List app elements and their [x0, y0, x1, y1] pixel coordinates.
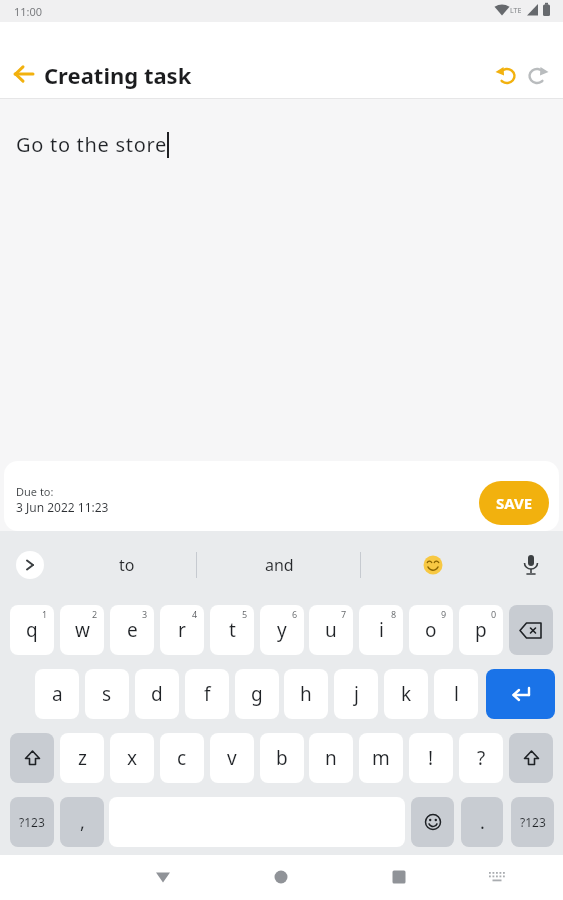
staticText: .: [480, 810, 485, 835]
staticText: p: [475, 617, 487, 643]
button[interactable]: d: [135, 669, 179, 719]
button[interactable]: y: [260, 605, 304, 655]
button[interactable]: j: [334, 669, 378, 719]
staticText: h: [300, 681, 312, 707]
staticText: a: [52, 681, 63, 707]
staticText: 3: [142, 608, 148, 620]
button[interactable]: [492, 61, 520, 89]
button[interactable]: c: [160, 733, 204, 783]
button[interactable]: h: [284, 669, 328, 719]
staticText: e: [127, 617, 138, 643]
staticText: z: [78, 745, 87, 771]
button[interactable]: r: [160, 605, 204, 655]
button[interactable]: [511, 545, 551, 585]
staticText: 8: [391, 608, 397, 620]
button[interactable]: g: [235, 669, 279, 719]
button[interactable]: [486, 669, 555, 719]
button[interactable]: k: [384, 669, 428, 719]
staticText: g: [251, 681, 263, 707]
staticText: 1: [42, 608, 48, 620]
button[interactable]: [477, 857, 517, 897]
button[interactable]: [10, 733, 54, 783]
staticText: 3 Jun 2022 11:23: [16, 499, 109, 515]
staticText: f: [204, 681, 211, 707]
button[interactable]: q: [10, 605, 54, 655]
button[interactable]: w: [60, 605, 104, 655]
staticText: y: [277, 617, 287, 643]
staticText: t: [229, 617, 236, 643]
staticText: u: [325, 617, 337, 643]
staticText: v: [227, 745, 237, 771]
button[interactable]: [16, 551, 44, 579]
staticText: Go to the store: [16, 131, 167, 158]
button[interactable]: ,: [60, 797, 104, 847]
button[interactable]: [411, 797, 454, 847]
staticText: ?: [477, 745, 486, 771]
staticText: d: [151, 681, 163, 707]
staticText: ?123: [520, 814, 546, 830]
staticText: 11:00: [14, 4, 43, 19]
button[interactable]: ?: [459, 733, 503, 783]
staticText: LTE: [510, 6, 522, 16]
staticText: b: [276, 745, 288, 771]
button[interactable]: [261, 857, 301, 897]
button[interactable]: [143, 857, 183, 897]
staticText: k: [401, 681, 412, 707]
button[interactable]: ?123: [511, 797, 554, 847]
staticText: o: [425, 617, 437, 643]
staticText: Due to:: [16, 484, 54, 499]
staticText: and: [265, 554, 294, 576]
staticText: 9: [441, 608, 447, 620]
staticText: w: [75, 617, 90, 643]
button[interactable]: [4, 54, 44, 94]
button[interactable]: l: [434, 669, 478, 719]
staticText: j: [354, 681, 359, 707]
staticText: 4: [192, 608, 198, 620]
button[interactable]: SAVE: [479, 481, 549, 525]
button[interactable]: t: [210, 605, 254, 655]
button[interactable]: v: [210, 733, 254, 783]
staticText: Creating task: [44, 60, 192, 90]
staticText: s: [102, 681, 112, 707]
button[interactable]: x: [110, 733, 154, 783]
button[interactable]: ?123: [10, 797, 54, 847]
button[interactable]: i: [359, 605, 403, 655]
staticText: !: [428, 745, 434, 771]
staticText: SAVE: [496, 493, 533, 513]
button[interactable]: [413, 545, 453, 585]
button[interactable]: a: [35, 669, 79, 719]
button[interactable]: s: [85, 669, 129, 719]
button[interactable]: .: [461, 797, 503, 847]
staticText: 0: [491, 608, 497, 620]
button[interactable]: [523, 61, 551, 89]
button[interactable]: to: [58, 545, 196, 585]
staticText: i: [379, 617, 384, 643]
staticText: c: [177, 745, 187, 771]
staticText: m: [372, 745, 390, 771]
button[interactable]: b: [260, 733, 304, 783]
staticText: to: [119, 554, 135, 576]
staticText: n: [325, 745, 337, 771]
button[interactable]: z: [60, 733, 104, 783]
button[interactable]: p: [459, 605, 503, 655]
button[interactable]: [379, 857, 419, 897]
staticText: ?123: [19, 814, 45, 830]
button[interactable]: !: [409, 733, 453, 783]
button[interactable]: [509, 733, 553, 783]
button[interactable]: m: [359, 733, 403, 783]
button[interactable]: [509, 605, 553, 655]
staticText: r: [178, 617, 186, 643]
button[interactable]: o: [409, 605, 453, 655]
button[interactable]: f: [185, 669, 229, 719]
staticText: 7: [341, 608, 347, 620]
button[interactable]: n: [309, 733, 353, 783]
staticText: 5: [242, 608, 248, 620]
staticText: l: [454, 681, 459, 707]
button[interactable]: u: [309, 605, 353, 655]
button[interactable]: and: [199, 545, 359, 585]
button[interactable]: e: [110, 605, 154, 655]
staticText: x: [127, 745, 138, 771]
staticText: ,: [80, 810, 85, 835]
staticText: 2: [92, 608, 98, 620]
